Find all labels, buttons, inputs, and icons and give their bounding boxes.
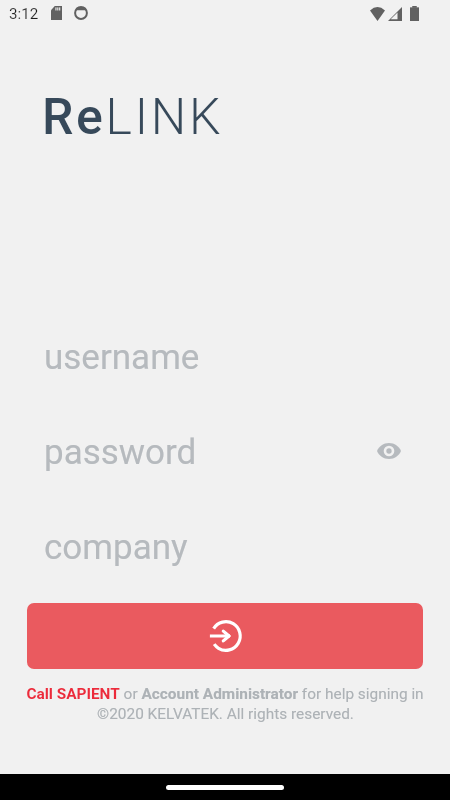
button[interactable]: username (0, 325, 450, 383)
staticText: ©2020 KELVATEK. All rights reserved. (97, 705, 354, 723)
button[interactable]: Show password (367, 429, 411, 473)
staticText: 3:12 (9, 5, 39, 23)
staticText: username (44, 337, 200, 378)
staticText: Call SAPIENT or Account Administrator fo… (26, 685, 424, 703)
button[interactable]: password (0, 420, 450, 478)
button[interactable]: Sign in (27, 603, 423, 669)
staticText: company (44, 527, 188, 568)
staticText: ReLINK (42, 88, 224, 147)
button[interactable]: company (0, 515, 450, 573)
staticText: password (44, 432, 197, 473)
button[interactable]: Call SAPIENT or Account Administrator fo… (0, 685, 450, 703)
